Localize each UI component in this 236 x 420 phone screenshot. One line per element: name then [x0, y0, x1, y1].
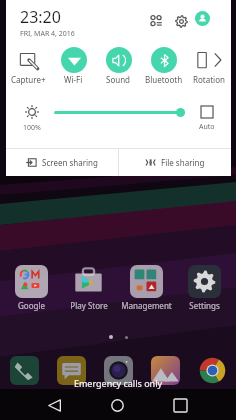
staticText: 100% [23, 123, 41, 131]
staticText: Wi-Fi [64, 74, 83, 85]
staticText: Screen sharing [42, 157, 98, 168]
staticText: Management [121, 300, 172, 311]
button[interactable]: Management [117, 265, 175, 311]
staticText: Bluetooth [145, 74, 183, 85]
button[interactable]: Camera [95, 350, 142, 390]
button[interactable]: Rotation [186, 45, 231, 86]
staticText: Google [18, 300, 45, 311]
button[interactable]: Bluetooth [141, 45, 186, 86]
button[interactable]: Recents [168, 393, 192, 417]
button[interactable]: Auto brightness [198, 105, 216, 131]
staticText: Settings [189, 300, 220, 311]
staticText: Play Store [70, 300, 108, 311]
button[interactable]: Phone [0, 350, 48, 390]
button[interactable]: Edit quick settings [147, 12, 165, 30]
button[interactable]: Google [3, 265, 60, 311]
button[interactable]: Screen sharing [6, 149, 118, 176]
button[interactable]: Back [42, 393, 66, 417]
button[interactable]: User profile [195, 11, 210, 26]
button[interactable]: Play Store [60, 265, 117, 311]
staticText: Capture+ [11, 74, 46, 85]
button[interactable]: Capture+ [6, 45, 51, 86]
button[interactable]: Home [105, 393, 129, 417]
button[interactable]: Messages [48, 350, 95, 390]
staticText: Auto [199, 122, 215, 131]
button[interactable]: Gallery [142, 350, 189, 390]
staticText: Sound [106, 74, 131, 85]
button[interactable]: Sound [96, 45, 141, 86]
staticText: 23:20 [20, 6, 61, 28]
staticText: Rotation [193, 74, 225, 85]
staticText: File sharing [161, 157, 205, 168]
staticText: FRI, MAR 4, 2016 [20, 29, 75, 39]
button[interactable]: Wi-Fi [51, 45, 96, 86]
button[interactable]: File sharing [119, 149, 231, 176]
button[interactable]: Settings [172, 12, 190, 30]
button[interactable]: Chrome [189, 350, 236, 390]
button[interactable]: Settings [175, 265, 233, 311]
staticText: Emergency calls only [0, 377, 236, 389]
